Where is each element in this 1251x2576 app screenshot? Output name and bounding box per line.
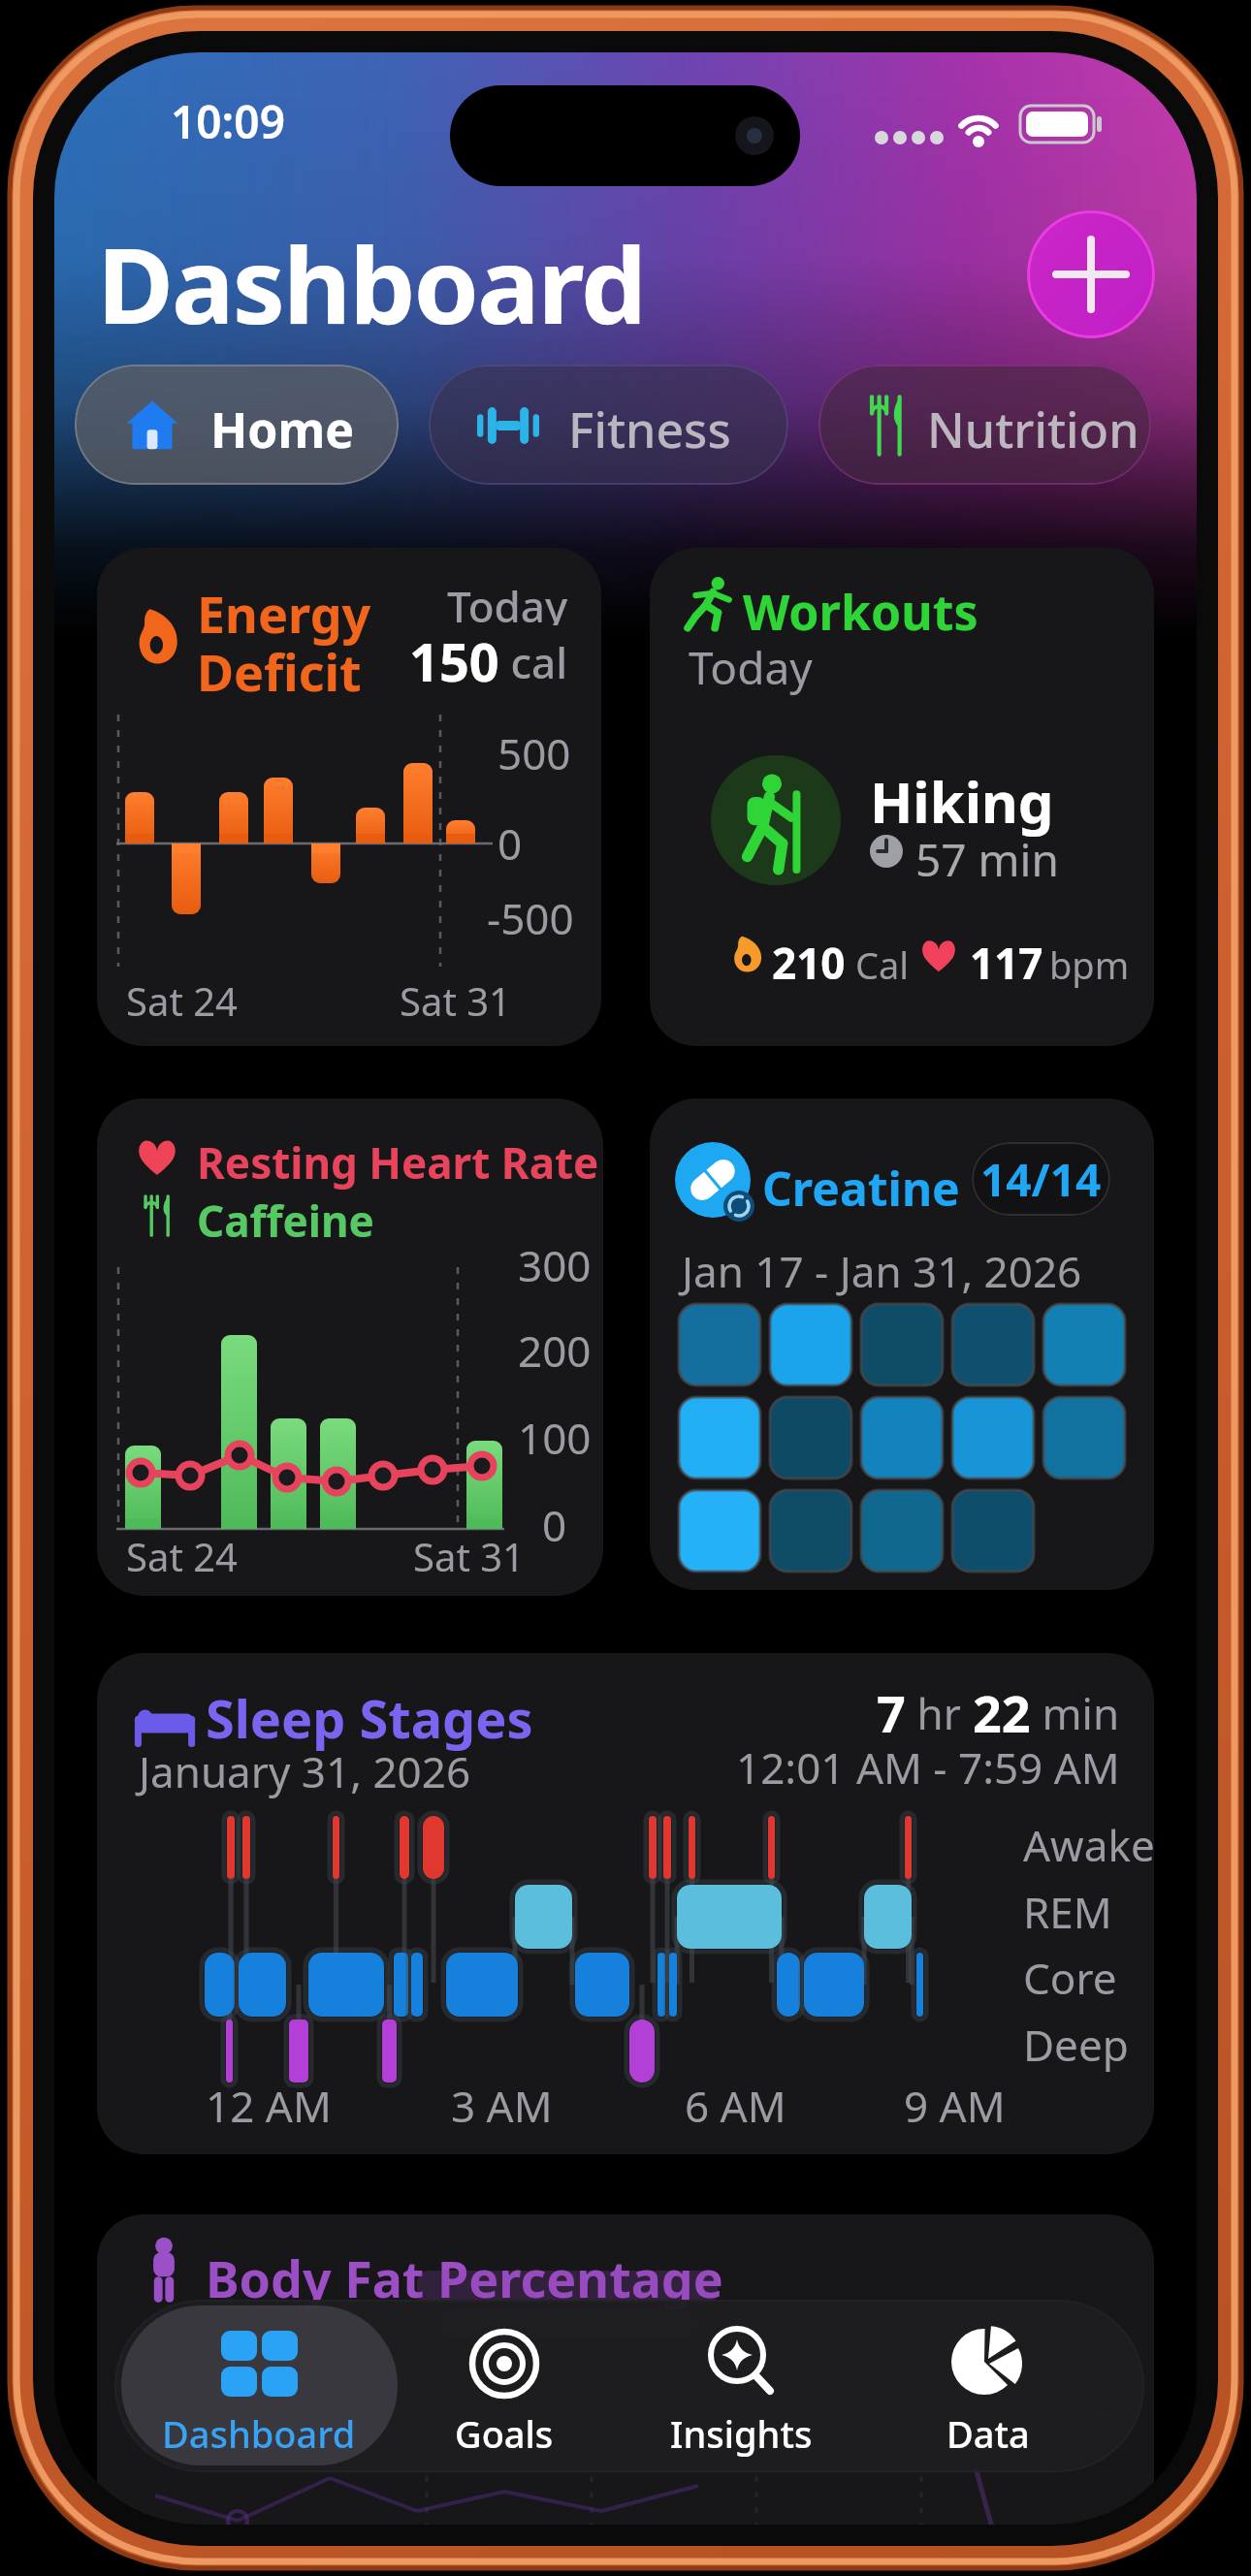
button[interactable]: Resting Heart Rate [97, 1098, 603, 1596]
staticText: Sat 24 [126, 1530, 238, 1582]
staticText: January 31, 2026 [139, 1742, 471, 1800]
button[interactable]: Energy [97, 548, 601, 1046]
staticText: bpm [1049, 939, 1130, 990]
staticText: Energy [197, 579, 371, 648]
button[interactable]: Data [864, 2300, 1112, 2472]
staticText: Home [210, 397, 355, 462]
staticText: 3 AM [451, 2077, 553, 2135]
staticText: Sat 24 [126, 974, 238, 1027]
staticText: Insights [670, 2408, 813, 2459]
button[interactable]: Creatine [650, 1098, 1154, 1590]
staticText: -500 [487, 889, 574, 947]
staticText: 9 AM [904, 2077, 1006, 2135]
staticText: 12:01 AM - 7:59 AM [736, 1738, 1120, 1787]
staticText: Nutrition [927, 397, 1139, 462]
staticText: Dashboard [97, 212, 645, 355]
staticText: 300 [518, 1236, 592, 1294]
staticText: Creatine [762, 1157, 960, 1220]
staticText: 210 [772, 934, 846, 992]
staticText: 57 min [915, 829, 1059, 890]
staticText: Data [946, 2408, 1030, 2459]
staticText: Sat 31 [400, 974, 511, 1027]
staticText: Workouts [743, 579, 978, 645]
staticText: hr [906, 1684, 973, 1742]
staticText: 117 [970, 934, 1043, 992]
staticText: Fitness [568, 397, 731, 462]
staticText: 10:09 [171, 91, 285, 152]
staticText: 7 [877, 1678, 906, 1736]
staticText: min [1031, 1684, 1120, 1742]
staticText: 0 [497, 814, 523, 873]
button[interactable]: Dashboard [135, 2300, 383, 2472]
button[interactable]: Fitness [429, 365, 788, 485]
button[interactable]: Goals [380, 2300, 628, 2472]
button[interactable]: Sleep Stages [97, 1653, 1154, 2154]
staticText: 12 AM [206, 2077, 332, 2135]
staticText: Core [1023, 1949, 1117, 2007]
button[interactable]: Workouts [650, 548, 1154, 1046]
staticText: 200 [518, 1321, 592, 1380]
staticText: Hiking [870, 763, 1054, 840]
button[interactable]: Insights [617, 2300, 865, 2472]
staticText: 6 AM [685, 2077, 786, 2135]
staticText: Today [689, 637, 813, 698]
staticText: Deficit [197, 637, 362, 706]
staticText: cal [499, 633, 568, 691]
button[interactable]: Home [75, 365, 399, 485]
button[interactable] [121, 2306, 398, 2465]
staticText: Jan 17 - Jan 31, 2026 [682, 1242, 1082, 1300]
button[interactable]: Body Fat Percentage [97, 2214, 1154, 2525]
staticText: Goals [455, 2408, 554, 2459]
staticText: Deep [1023, 2016, 1129, 2074]
staticText: 100 [518, 1409, 592, 1467]
staticText: Body Fat Percentage [206, 2243, 723, 2312]
staticText: Today [447, 577, 568, 625]
button[interactable] [1027, 210, 1155, 338]
staticText: Awake [1023, 1816, 1154, 1874]
staticText: Sleep Stages [206, 1682, 533, 1754]
button[interactable]: Nutrition [818, 365, 1151, 485]
staticText: Sat 31 [413, 1530, 525, 1582]
staticText: Cal [855, 939, 910, 990]
staticText: 14/14 [980, 1149, 1102, 1210]
staticText: Resting Heart Rate [197, 1133, 599, 1192]
staticText: 500 [497, 724, 571, 782]
staticText: 22 [973, 1678, 1031, 1736]
staticText: 0 [542, 1496, 567, 1554]
staticText: Caffeine [197, 1192, 374, 1250]
staticText: Dashboard [162, 2408, 356, 2459]
staticText: REM [1023, 1883, 1112, 1941]
staticText: 150 [409, 625, 499, 684]
